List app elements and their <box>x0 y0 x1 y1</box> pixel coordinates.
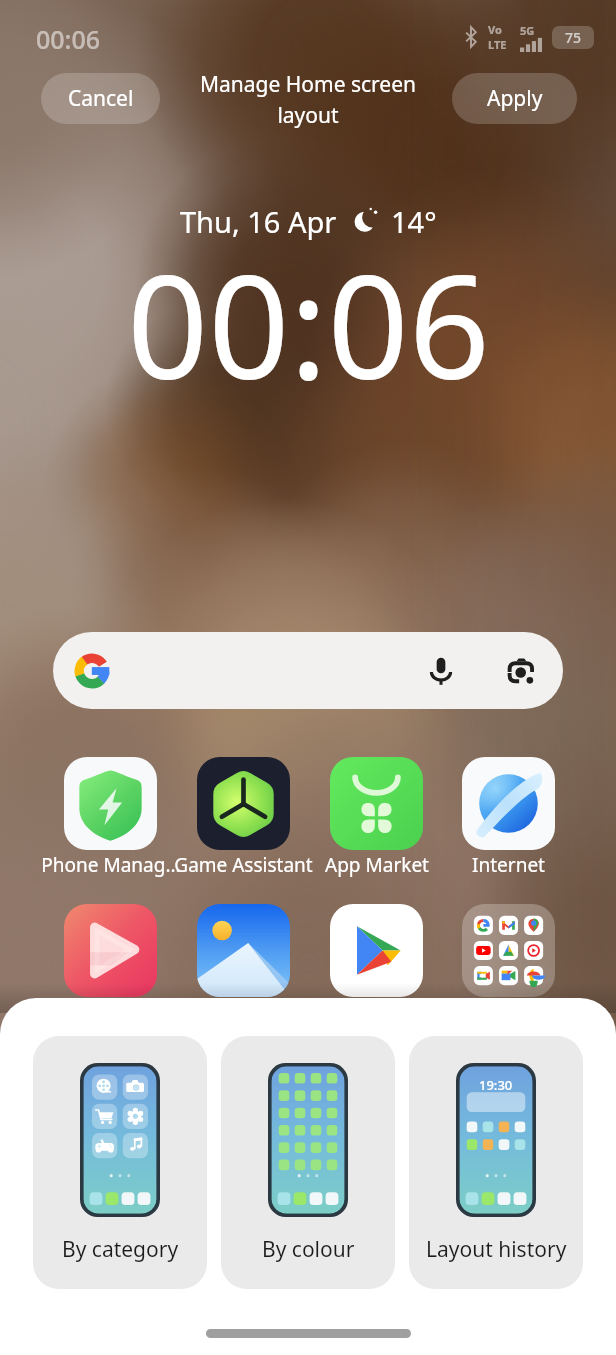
staticText: 14° <box>391 202 437 241</box>
button[interactable]: Apply <box>452 73 577 124</box>
button[interactable]: Play Store <box>330 904 423 997</box>
staticText: 5G <box>520 23 535 38</box>
other: Google Lens <box>503 654 537 688</box>
staticText: Game Assistant <box>174 852 313 878</box>
button[interactable]: Google apps <box>462 904 555 997</box>
button[interactable]: Cancel <box>41 73 160 124</box>
staticText: Thu, 16 Apr <box>180 202 337 241</box>
button[interactable]: Voice search <box>53 632 563 709</box>
button[interactable]: Internet <box>422 757 595 878</box>
staticText: 00:06 <box>36 22 101 56</box>
button[interactable]: By colour <box>221 1036 395 1289</box>
button[interactable]: Game Assistant <box>157 757 330 878</box>
staticText: Apply <box>487 84 543 113</box>
button[interactable]: Phone Manag... <box>24 757 197 878</box>
staticText: Manage Home screen layout <box>193 70 423 129</box>
staticText: Phone Manag... <box>41 852 181 878</box>
staticText: Vo <box>488 22 502 37</box>
staticText: Internet <box>472 852 545 878</box>
button[interactable]: App Market <box>290 757 463 878</box>
staticText: 75 <box>565 28 582 47</box>
button[interactable]: Video player <box>64 904 157 997</box>
staticText: Layout history <box>426 1235 567 1264</box>
button[interactable]: 19:30 <box>409 1036 583 1289</box>
staticText: By category <box>62 1235 179 1264</box>
button[interactable]: Gallery <box>197 904 290 997</box>
staticText: By colour <box>262 1235 355 1264</box>
staticText: Cancel <box>68 84 134 113</box>
staticText: 19:30 <box>479 1076 513 1094</box>
staticText: App Market <box>325 852 429 878</box>
other: Voice search <box>426 656 456 686</box>
staticText: 00:06 <box>127 227 490 420</box>
button[interactable]: By category <box>33 1036 207 1289</box>
staticText: LTE <box>488 37 507 52</box>
